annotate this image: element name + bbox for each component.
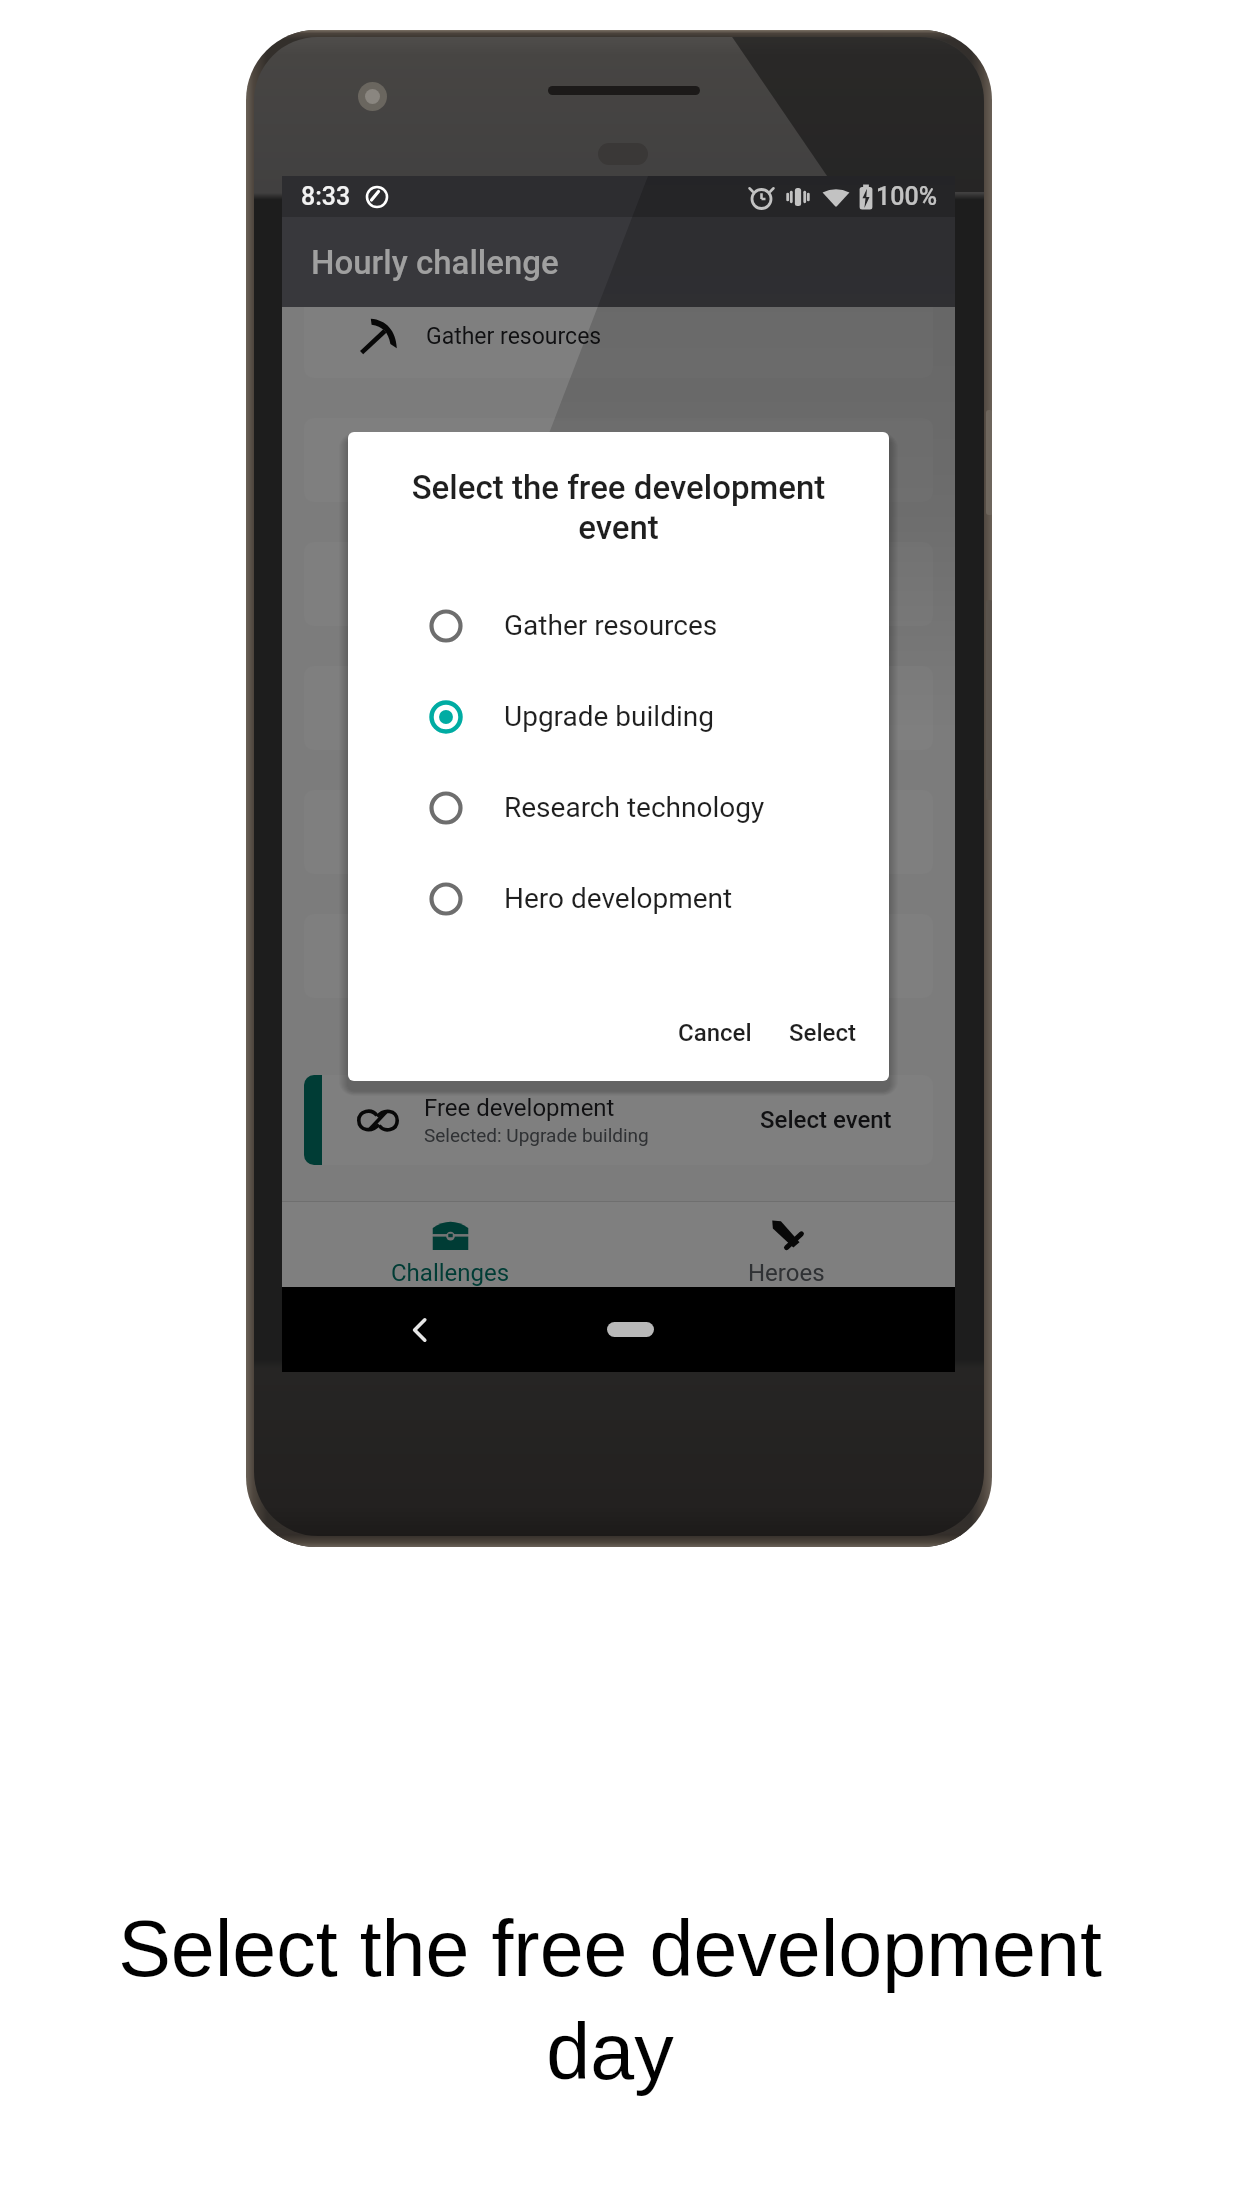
staticText: 8:33	[301, 182, 351, 211]
staticText: Hero development	[504, 882, 733, 915]
button[interactable]	[304, 418, 933, 502]
staticText: Challenges	[391, 1259, 510, 1287]
staticText: Research technology	[504, 791, 765, 824]
staticText: Select	[789, 1019, 856, 1047]
button[interactable]	[304, 790, 933, 874]
staticText: 100%	[876, 182, 937, 211]
button[interactable]: Heroes	[618, 1202, 955, 1287]
staticText: Select event	[760, 1106, 892, 1134]
button[interactable]: Upgrade building	[348, 671, 889, 762]
button[interactable]: Hero development	[348, 853, 889, 944]
staticText: Upgrade building	[504, 700, 714, 733]
button[interactable]: Challenges	[282, 1202, 618, 1287]
staticText: Free development	[424, 1094, 615, 1122]
staticText: Select the free development day	[100, 1904, 1120, 2096]
staticText: Gather resources	[426, 323, 602, 350]
button[interactable]: Select	[775, 1009, 870, 1057]
staticText: Cancel	[678, 1019, 752, 1047]
button[interactable]: Cancel	[664, 1009, 766, 1057]
staticText: Gather resources	[504, 609, 718, 642]
button[interactable]: Gather resources	[348, 580, 889, 671]
button[interactable]: Back	[398, 1308, 442, 1352]
staticText: Select the free development event	[374, 468, 863, 548]
button[interactable]: Free development	[304, 1075, 933, 1165]
staticText: Heroes	[748, 1259, 825, 1287]
button[interactable]: Research technology	[348, 762, 889, 853]
button[interactable]	[304, 914, 933, 998]
button[interactable]	[304, 666, 933, 750]
button[interactable]: Gather resources	[304, 294, 933, 378]
staticText: Hourly challenge	[311, 243, 559, 282]
button[interactable]	[304, 542, 933, 626]
button[interactable]: Home	[607, 1322, 654, 1337]
button[interactable]: Select event	[760, 1075, 933, 1165]
staticText: Selected: Upgrade building	[424, 1124, 649, 1146]
